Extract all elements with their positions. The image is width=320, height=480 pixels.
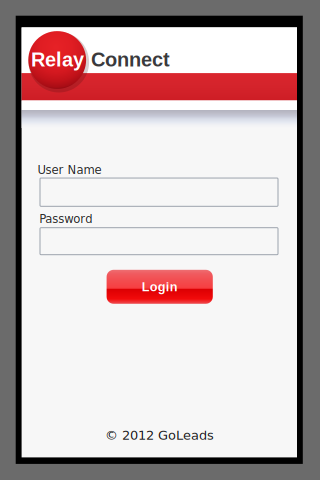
staticText: © 2012 GoLeads (105, 428, 214, 443)
staticText: Password (39, 212, 92, 226)
staticText: Connect (91, 48, 170, 71)
staticText: Relay (31, 48, 84, 71)
staticText: Login (142, 280, 178, 294)
staticText: User Name (37, 163, 101, 177)
button[interactable]: Login (107, 270, 213, 304)
